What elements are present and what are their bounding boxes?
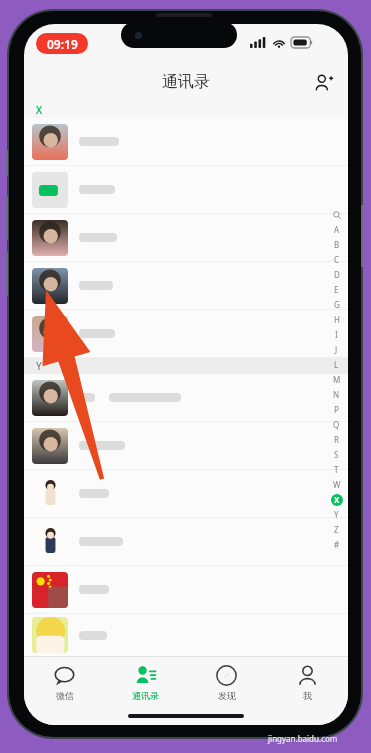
staticText: W xyxy=(333,479,341,490)
button[interactable] xyxy=(24,166,348,213)
button[interactable]: E xyxy=(330,282,343,297)
staticText: # xyxy=(334,539,340,550)
button[interactable] xyxy=(24,614,348,656)
staticText: J xyxy=(335,344,338,355)
staticText: Y xyxy=(334,509,339,520)
button[interactable]: 我 xyxy=(267,657,348,707)
button[interactable]: R xyxy=(330,432,343,447)
staticText: 通讯录 xyxy=(162,72,210,92)
button[interactable] xyxy=(330,207,343,222)
staticText: L xyxy=(334,359,339,370)
staticText: jingyan.baidu.com xyxy=(268,733,338,744)
button[interactable]: S xyxy=(330,447,343,462)
button[interactable]: A xyxy=(330,222,343,237)
staticText: 09:19 xyxy=(47,36,78,52)
staticText: 通讯录 xyxy=(132,690,159,701)
staticText: A xyxy=(334,224,340,235)
button[interactable]: L xyxy=(330,357,343,372)
staticText: N xyxy=(333,389,340,400)
button[interactable]: G xyxy=(330,297,343,312)
staticText: X xyxy=(36,103,43,117)
button[interactable]: X xyxy=(330,492,343,507)
staticText: C xyxy=(334,254,340,265)
button[interactable]: W xyxy=(330,477,343,492)
staticText: 发现 xyxy=(218,690,236,701)
button[interactable]: M xyxy=(330,372,343,387)
staticText: T xyxy=(334,464,339,475)
button[interactable] xyxy=(24,566,348,613)
staticText: S xyxy=(334,449,339,460)
button[interactable]: # xyxy=(330,537,343,552)
button[interactable]: Add contact xyxy=(308,67,338,97)
staticText: Y xyxy=(36,359,42,373)
button[interactable] xyxy=(24,310,348,357)
button[interactable] xyxy=(24,262,348,309)
staticText: E xyxy=(334,284,339,295)
button[interactable]: H xyxy=(330,312,343,327)
button[interactable] xyxy=(24,374,348,421)
button[interactable] xyxy=(24,422,348,469)
staticText: X xyxy=(334,494,340,505)
button[interactable]: B xyxy=(330,237,343,252)
staticText: Z xyxy=(334,524,339,535)
button[interactable]: T xyxy=(330,462,343,477)
button[interactable] xyxy=(24,518,348,565)
button[interactable] xyxy=(24,214,348,261)
button[interactable] xyxy=(24,118,348,165)
staticText: I xyxy=(335,329,338,340)
staticText: B xyxy=(334,239,340,250)
button[interactable]: P xyxy=(330,402,343,417)
button[interactable]: D xyxy=(330,267,343,282)
button[interactable]: N xyxy=(330,387,343,402)
staticText: R xyxy=(334,434,339,445)
button[interactable]: Y xyxy=(330,507,343,522)
button[interactable]: C xyxy=(330,252,343,267)
staticText: Q xyxy=(333,419,340,430)
button[interactable]: 发现 xyxy=(186,657,267,707)
staticText: P xyxy=(334,404,339,415)
button[interactable]: Q xyxy=(330,417,343,432)
button[interactable]: I xyxy=(330,327,343,342)
staticText: M xyxy=(333,374,341,385)
staticText: G xyxy=(334,299,340,310)
button[interactable]: 通讯录 xyxy=(105,657,186,707)
button[interactable] xyxy=(24,470,348,517)
staticText: H xyxy=(334,314,340,325)
button[interactable]: 微信 xyxy=(24,657,105,707)
button[interactable]: Z xyxy=(330,522,343,537)
staticText: D xyxy=(334,269,340,280)
staticText: 我 xyxy=(303,690,312,701)
button[interactable]: J xyxy=(330,342,343,357)
staticText: 微信 xyxy=(56,690,74,701)
